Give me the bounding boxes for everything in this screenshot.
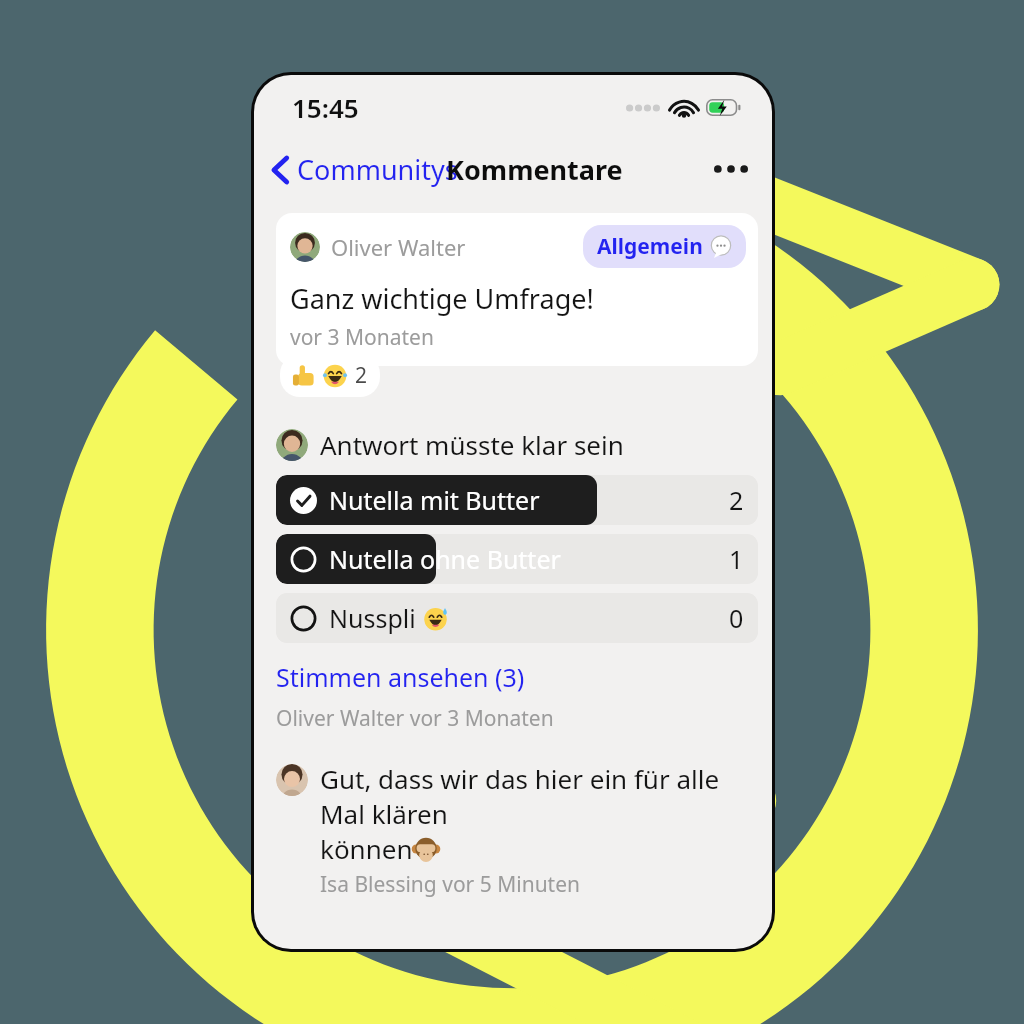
button[interactable]: Nutella mit Butter [276, 475, 758, 525]
button[interactable]: Nutella ohne Butter [276, 534, 758, 584]
button[interactable]: Oliver Walter [276, 213, 758, 366]
staticText: Oliver Walter [331, 232, 466, 262]
staticText: Gut, dass wir das hier ein für alle Mal … [320, 761, 752, 831]
staticText: Nutella ohne Butter [329, 542, 561, 576]
staticText: Ganz wichtige Umfrage! [290, 280, 594, 317]
button[interactable]: Mehr Optionen [702, 153, 760, 185]
staticText: Isa Blessing vor 5 Minuten [320, 870, 581, 899]
staticText: Oliver Walter vor 3 Monaten [276, 704, 554, 733]
staticText: Nusspli [329, 601, 423, 635]
staticText: vor 3 Monaten [290, 323, 434, 352]
button[interactable]: Communitys [264, 146, 466, 193]
staticText: Communitys [297, 151, 458, 188]
staticText: 15:45 [292, 90, 359, 125]
staticText: 0 [729, 601, 744, 635]
staticText: Nutella mit Butter [329, 483, 540, 517]
staticText: 2 [355, 361, 368, 390]
button[interactable]: 2 [280, 354, 380, 397]
staticText: Allgemein [597, 232, 703, 261]
button[interactable]: Gut, dass wir das hier ein für alle Mal … [276, 761, 752, 899]
button[interactable]: Allgemein [583, 225, 746, 268]
staticText: können [320, 831, 413, 866]
staticText: Kommentare [446, 151, 623, 188]
staticText: Antwort müsste klar sein [320, 427, 624, 462]
staticText: 2 [729, 483, 744, 517]
button[interactable]: Stimmen ansehen (3) [276, 660, 525, 694]
staticText: 1 [729, 542, 744, 576]
button[interactable]: Nusspli [276, 593, 758, 643]
staticText: Stimmen ansehen (3) [276, 660, 525, 694]
